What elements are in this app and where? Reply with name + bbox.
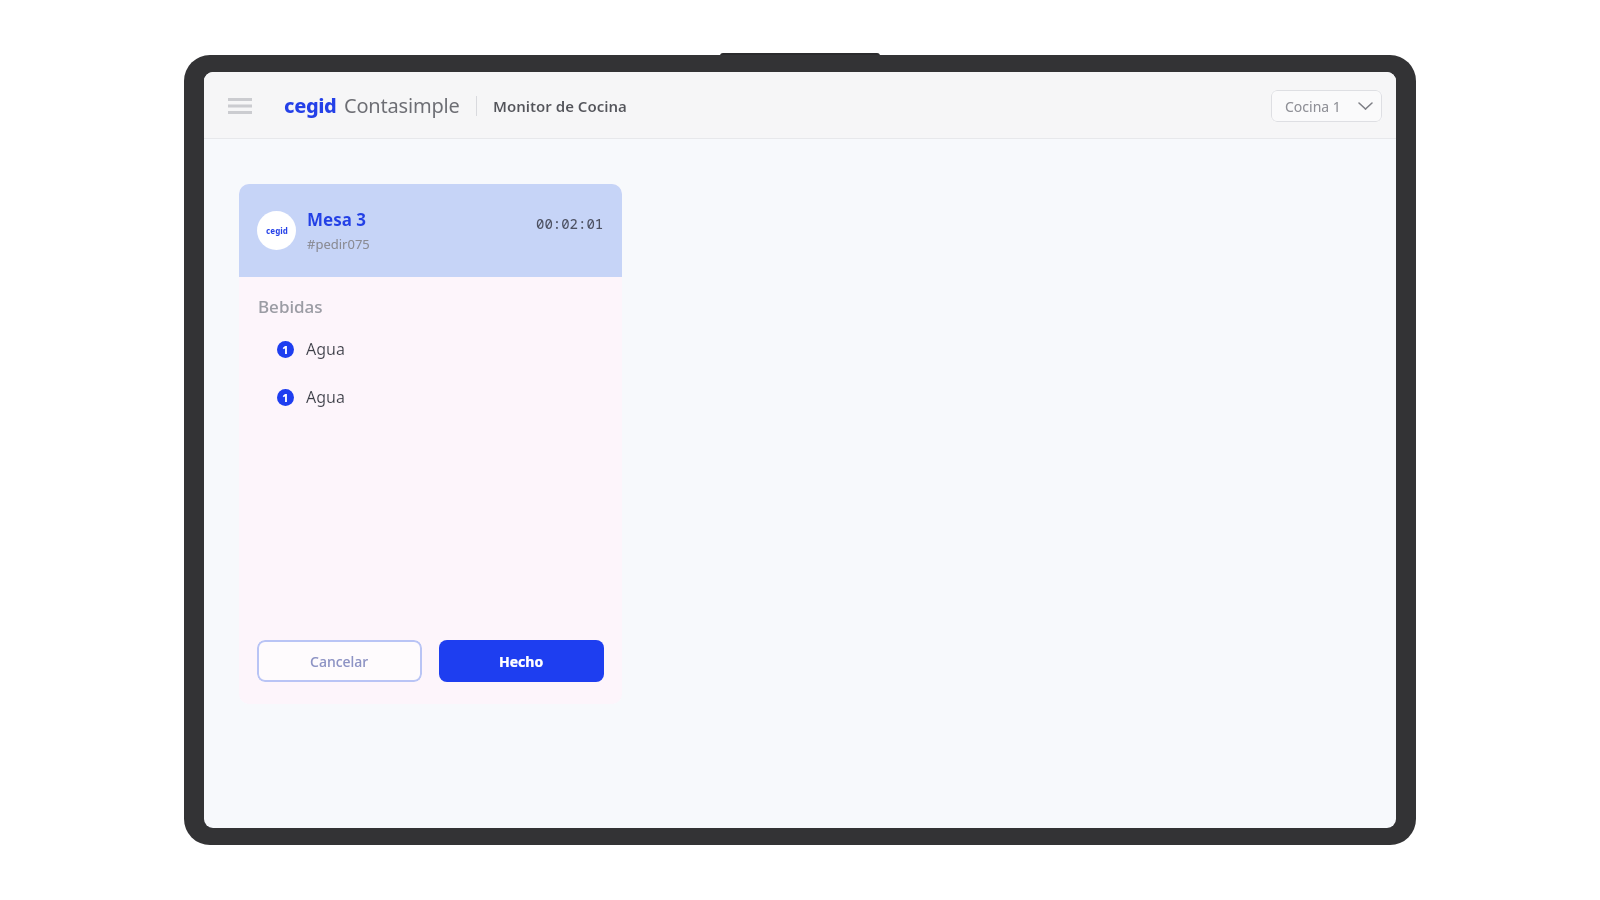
button[interactable]: Cocina 1 xyxy=(1271,90,1382,122)
button[interactable]: 1 xyxy=(239,382,622,412)
staticText: Agua xyxy=(306,386,345,408)
staticText: Hecho xyxy=(499,652,544,671)
staticText: Monitor de Cocina xyxy=(493,96,627,116)
staticText: Bebidas xyxy=(258,295,323,318)
staticText: Cocina 1 xyxy=(1285,97,1341,116)
button[interactable]: Menu xyxy=(218,84,262,128)
button[interactable]: cegid xyxy=(239,184,622,277)
button[interactable]: 1 xyxy=(239,334,622,364)
staticText: #pedir075 xyxy=(307,235,370,253)
staticText: Contasimple xyxy=(344,92,460,119)
button[interactable]: Hecho xyxy=(439,640,604,682)
staticText: 00:02:01 xyxy=(536,214,604,233)
staticText: Mesa 3 xyxy=(307,208,367,231)
staticText: cegid xyxy=(266,225,288,236)
staticText: Cancelar xyxy=(310,652,369,671)
staticText: 1 xyxy=(282,342,289,357)
staticText: 1 xyxy=(282,390,289,405)
staticText: cegid xyxy=(284,92,337,119)
button[interactable]: Cancelar xyxy=(257,640,422,682)
staticText: Agua xyxy=(306,338,345,360)
